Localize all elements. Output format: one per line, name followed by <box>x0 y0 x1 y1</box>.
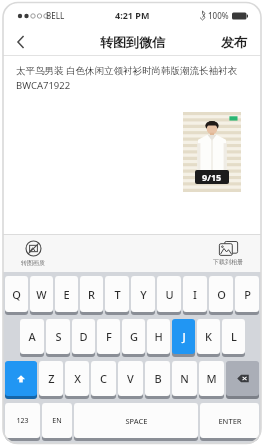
button[interactable]: 下载到相册 <box>213 241 243 266</box>
staticText: M <box>206 371 217 386</box>
staticText: X <box>74 371 81 386</box>
staticText: F <box>106 329 112 344</box>
button[interactable]: A <box>20 319 44 354</box>
staticText: 发布 <box>221 34 247 50</box>
staticText: H <box>154 329 163 344</box>
staticText: N <box>180 371 189 386</box>
staticText: C <box>100 371 107 386</box>
button[interactable]: M <box>199 361 224 396</box>
staticText: 9/15 <box>202 171 222 183</box>
staticText: J <box>182 329 186 344</box>
button[interactable]: I <box>183 276 207 312</box>
staticText: A <box>28 329 36 344</box>
staticText: 转图到微信 <box>100 34 165 50</box>
button[interactable]: Back <box>3 28 39 55</box>
button[interactable]: 转图画质 <box>21 240 45 267</box>
button[interactable]: SPACE <box>74 403 198 438</box>
button[interactable]: W <box>30 276 53 312</box>
staticText: B <box>154 371 162 386</box>
button[interactable]: EN <box>42 403 72 438</box>
staticText: O <box>217 287 226 302</box>
staticText: SPACE <box>125 416 148 426</box>
button[interactable]: Y <box>131 276 155 312</box>
button[interactable]: Shift <box>5 361 37 396</box>
button[interactable]: Z <box>39 361 63 396</box>
staticText: EN <box>52 416 62 426</box>
staticText: D <box>79 329 88 344</box>
button[interactable]: P <box>235 276 259 312</box>
staticText: U <box>165 287 174 302</box>
button[interactable]: C <box>91 361 116 396</box>
button[interactable]: R <box>80 276 103 312</box>
staticText: ENTER <box>218 416 242 426</box>
button[interactable]: Q <box>5 276 28 312</box>
staticText: T <box>114 287 121 302</box>
button[interactable]: Backspace <box>226 361 259 396</box>
staticText: Y <box>140 287 147 302</box>
button[interactable]: O <box>209 276 233 312</box>
staticText: BELL <box>46 10 65 21</box>
staticText: P <box>244 287 251 302</box>
staticText: V <box>127 371 134 386</box>
staticText: S <box>55 329 62 344</box>
staticText: W <box>36 287 47 302</box>
button[interactable]: K <box>197 319 220 354</box>
staticText: L <box>231 329 237 344</box>
staticText: 100% <box>208 10 229 21</box>
button[interactable]: N <box>172 361 197 396</box>
button[interactable]: D <box>72 319 95 354</box>
staticText: 下载到相册 <box>213 258 243 266</box>
button[interactable]: E <box>55 276 78 312</box>
button[interactable]: 发布 <box>207 28 261 55</box>
button[interactable]: T <box>105 276 129 312</box>
button[interactable]: J <box>172 319 195 354</box>
button[interactable]: L <box>222 319 245 354</box>
staticText: 太平鸟男装 白色休闲立领衬衫时尚韩版潮流长袖衬衣BWCA71922 <box>16 64 248 92</box>
staticText: Q <box>12 287 21 302</box>
button[interactable]: S <box>46 319 70 354</box>
button[interactable]: X <box>65 361 89 396</box>
staticText: 4:21 PM <box>115 9 150 21</box>
staticText: R <box>88 287 95 302</box>
staticText: 转图画质 <box>21 259 45 267</box>
button[interactable]: B <box>145 361 170 396</box>
button[interactable]: F <box>97 319 120 354</box>
button[interactable]: V <box>118 361 143 396</box>
staticText: K <box>205 329 212 344</box>
button[interactable]: 123 <box>5 403 40 438</box>
staticText: Z <box>48 371 55 386</box>
staticText: G <box>130 329 138 344</box>
staticText: I <box>193 287 197 302</box>
button[interactable]: ENTER <box>200 403 259 438</box>
button[interactable]: G <box>122 319 145 354</box>
button[interactable]: U <box>157 276 181 312</box>
button[interactable]: Image preview <box>183 112 241 190</box>
button[interactable]: H <box>147 319 170 354</box>
staticText: 123 <box>16 416 29 426</box>
staticText: E <box>63 287 70 302</box>
